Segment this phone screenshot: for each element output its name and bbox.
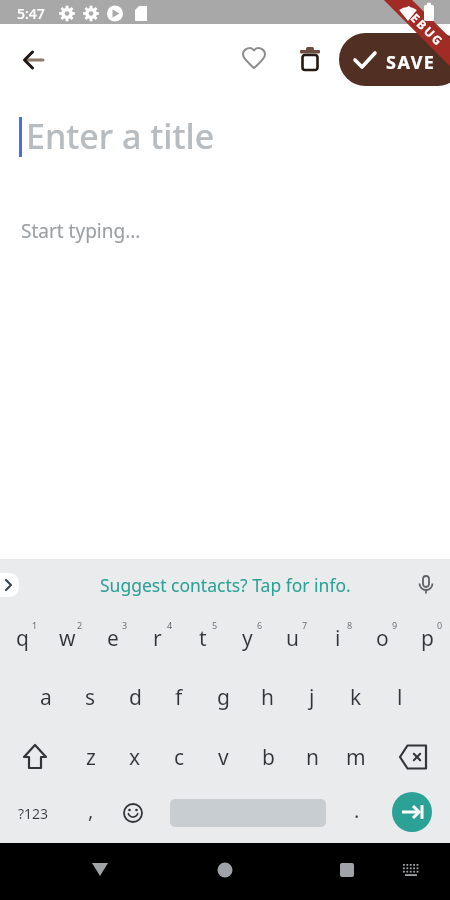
button[interactable]: a	[24, 673, 68, 721]
staticText: 2	[77, 619, 83, 631]
button[interactable]: p	[405, 614, 450, 662]
button[interactable]: m	[334, 733, 378, 781]
staticText: w	[59, 624, 76, 653]
button[interactable]	[113, 793, 153, 833]
button[interactable]: v	[201, 733, 245, 781]
staticText: 1	[32, 619, 38, 631]
staticText: Start typing...	[21, 218, 141, 244]
button[interactable]: f	[157, 673, 201, 721]
staticText: j	[309, 683, 315, 712]
button[interactable]	[393, 737, 433, 777]
button[interactable]: Start typing...	[16, 210, 434, 250]
staticText: q	[16, 624, 29, 653]
button[interactable]: u	[270, 614, 315, 662]
staticText: 7	[302, 619, 308, 631]
staticText: b	[262, 743, 275, 772]
button[interactable]: o	[360, 614, 405, 662]
staticText: s	[85, 683, 96, 712]
button[interactable]	[0, 573, 19, 597]
staticText: x	[129, 743, 141, 772]
staticText: p	[421, 624, 434, 653]
button[interactable]: c	[157, 733, 201, 781]
staticText: l	[397, 683, 403, 712]
staticText: o	[376, 624, 389, 653]
button[interactable]: j	[290, 673, 334, 721]
staticText: SAVE	[386, 50, 436, 75]
staticText: 3	[122, 619, 128, 631]
button[interactable]	[327, 850, 367, 890]
button[interactable]: ?123	[11, 793, 55, 833]
button[interactable]: w	[45, 614, 90, 662]
staticText: i	[335, 624, 341, 653]
staticText: c	[174, 743, 185, 772]
staticText: u	[286, 624, 299, 653]
button[interactable]: l	[378, 673, 422, 721]
button[interactable]: Suggest contacts? Tap for info.	[0, 571, 450, 599]
button[interactable]: x	[113, 733, 157, 781]
staticText: 5:47	[17, 4, 45, 23]
button[interactable]: h	[245, 673, 289, 721]
button[interactable]: Enter a title	[16, 108, 434, 160]
button[interactable]: q	[0, 614, 45, 662]
button[interactable]	[80, 850, 120, 890]
button[interactable]	[12, 39, 54, 81]
staticText: y	[242, 624, 253, 653]
staticText: 9	[392, 619, 398, 631]
staticText: d	[129, 683, 142, 712]
staticText: k	[350, 683, 362, 712]
button[interactable]: d	[113, 673, 157, 721]
staticText: f	[175, 683, 183, 712]
staticText: g	[217, 683, 230, 712]
staticText: e	[107, 624, 119, 653]
staticText: 5	[212, 619, 218, 631]
button[interactable]: g	[201, 673, 245, 721]
staticText: DEBUG	[400, 2, 448, 50]
staticText: 6	[257, 619, 263, 631]
button[interactable]: k	[334, 673, 378, 721]
button[interactable]: SAVE	[339, 33, 450, 86]
button[interactable]: z	[69, 733, 113, 781]
button[interactable]: e	[90, 614, 135, 662]
button[interactable]	[392, 792, 432, 832]
button[interactable]	[13, 737, 53, 777]
staticText: t	[199, 624, 207, 653]
button[interactable]: r	[135, 614, 180, 662]
staticText: ?123	[18, 804, 49, 823]
button[interactable]: b	[246, 733, 290, 781]
staticText: n	[306, 743, 319, 772]
staticText: .	[354, 797, 360, 824]
staticText: 0	[437, 619, 443, 631]
staticText: ,	[88, 797, 94, 824]
button[interactable]: i	[315, 614, 360, 662]
staticText: v	[218, 743, 229, 772]
button[interactable]: n	[290, 733, 334, 781]
button[interactable]: t	[180, 614, 225, 662]
button[interactable]: s	[68, 673, 112, 721]
button[interactable]	[205, 850, 245, 890]
staticText: 8	[347, 619, 353, 631]
staticText: a	[40, 683, 52, 712]
button[interactable]	[233, 39, 275, 81]
button[interactable]	[415, 573, 437, 597]
staticText: h	[261, 683, 274, 712]
button[interactable]	[289, 39, 331, 81]
button[interactable]: y	[225, 614, 270, 662]
staticText: Enter a title	[26, 113, 215, 159]
staticText: 4	[167, 619, 173, 631]
staticText: r	[153, 624, 162, 653]
button[interactable]	[391, 850, 431, 890]
staticText: Suggest contacts? Tap for info.	[100, 573, 351, 597]
staticText: m	[346, 743, 366, 772]
staticText: z	[86, 743, 96, 772]
